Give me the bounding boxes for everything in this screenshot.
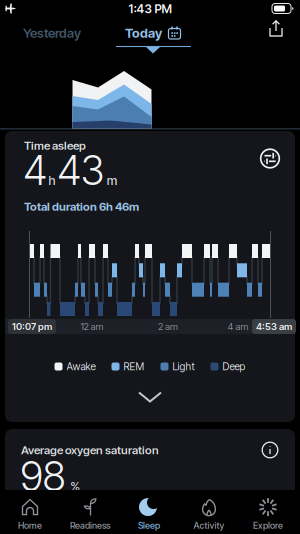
staticText: 1:43 PM xyxy=(128,2,171,16)
staticText: Sleep xyxy=(138,520,160,531)
staticText: 2 am xyxy=(158,321,178,332)
button[interactable]: About oxygen saturation xyxy=(261,441,279,459)
staticText: Awake xyxy=(66,360,95,373)
staticText: Light xyxy=(172,360,194,373)
button[interactable]: Yesterday xyxy=(23,25,81,41)
staticText: Readiness xyxy=(70,520,110,531)
staticText: 10:07 pm xyxy=(12,321,52,332)
button[interactable]: Readiness xyxy=(62,494,118,534)
staticText: REM xyxy=(123,360,144,373)
staticText: 12 am xyxy=(80,321,103,332)
staticText: Today xyxy=(125,25,162,41)
staticText: Total duration 6h 46m xyxy=(24,199,139,213)
staticText: Yesterday xyxy=(23,25,81,41)
staticText: Time asleep xyxy=(24,138,86,152)
staticText: 4:53 am xyxy=(256,321,292,332)
button[interactable]: Activity xyxy=(181,494,237,534)
staticText: 4 xyxy=(23,145,47,195)
staticText: % xyxy=(70,479,80,494)
staticText: m xyxy=(107,173,118,188)
button[interactable]: Today xyxy=(125,25,181,41)
staticText: Deep xyxy=(222,360,245,373)
button[interactable]: Share xyxy=(266,19,290,41)
staticText: Average oxygen saturation xyxy=(21,443,159,457)
staticText: 43 xyxy=(57,145,105,195)
staticText: Explore xyxy=(253,520,283,531)
button[interactable]: Sleep xyxy=(121,494,177,534)
staticText: h xyxy=(48,173,55,188)
button[interactable]: Home xyxy=(2,494,58,534)
button[interactable]: Adjust sleep time xyxy=(258,146,282,170)
staticText: 98 xyxy=(20,451,66,501)
staticText: Home xyxy=(18,520,42,531)
staticText: Activity xyxy=(193,520,224,531)
button[interactable]: Explore xyxy=(240,494,296,534)
staticText: 4 am xyxy=(227,321,248,332)
button[interactable]: Expand xyxy=(131,390,169,404)
